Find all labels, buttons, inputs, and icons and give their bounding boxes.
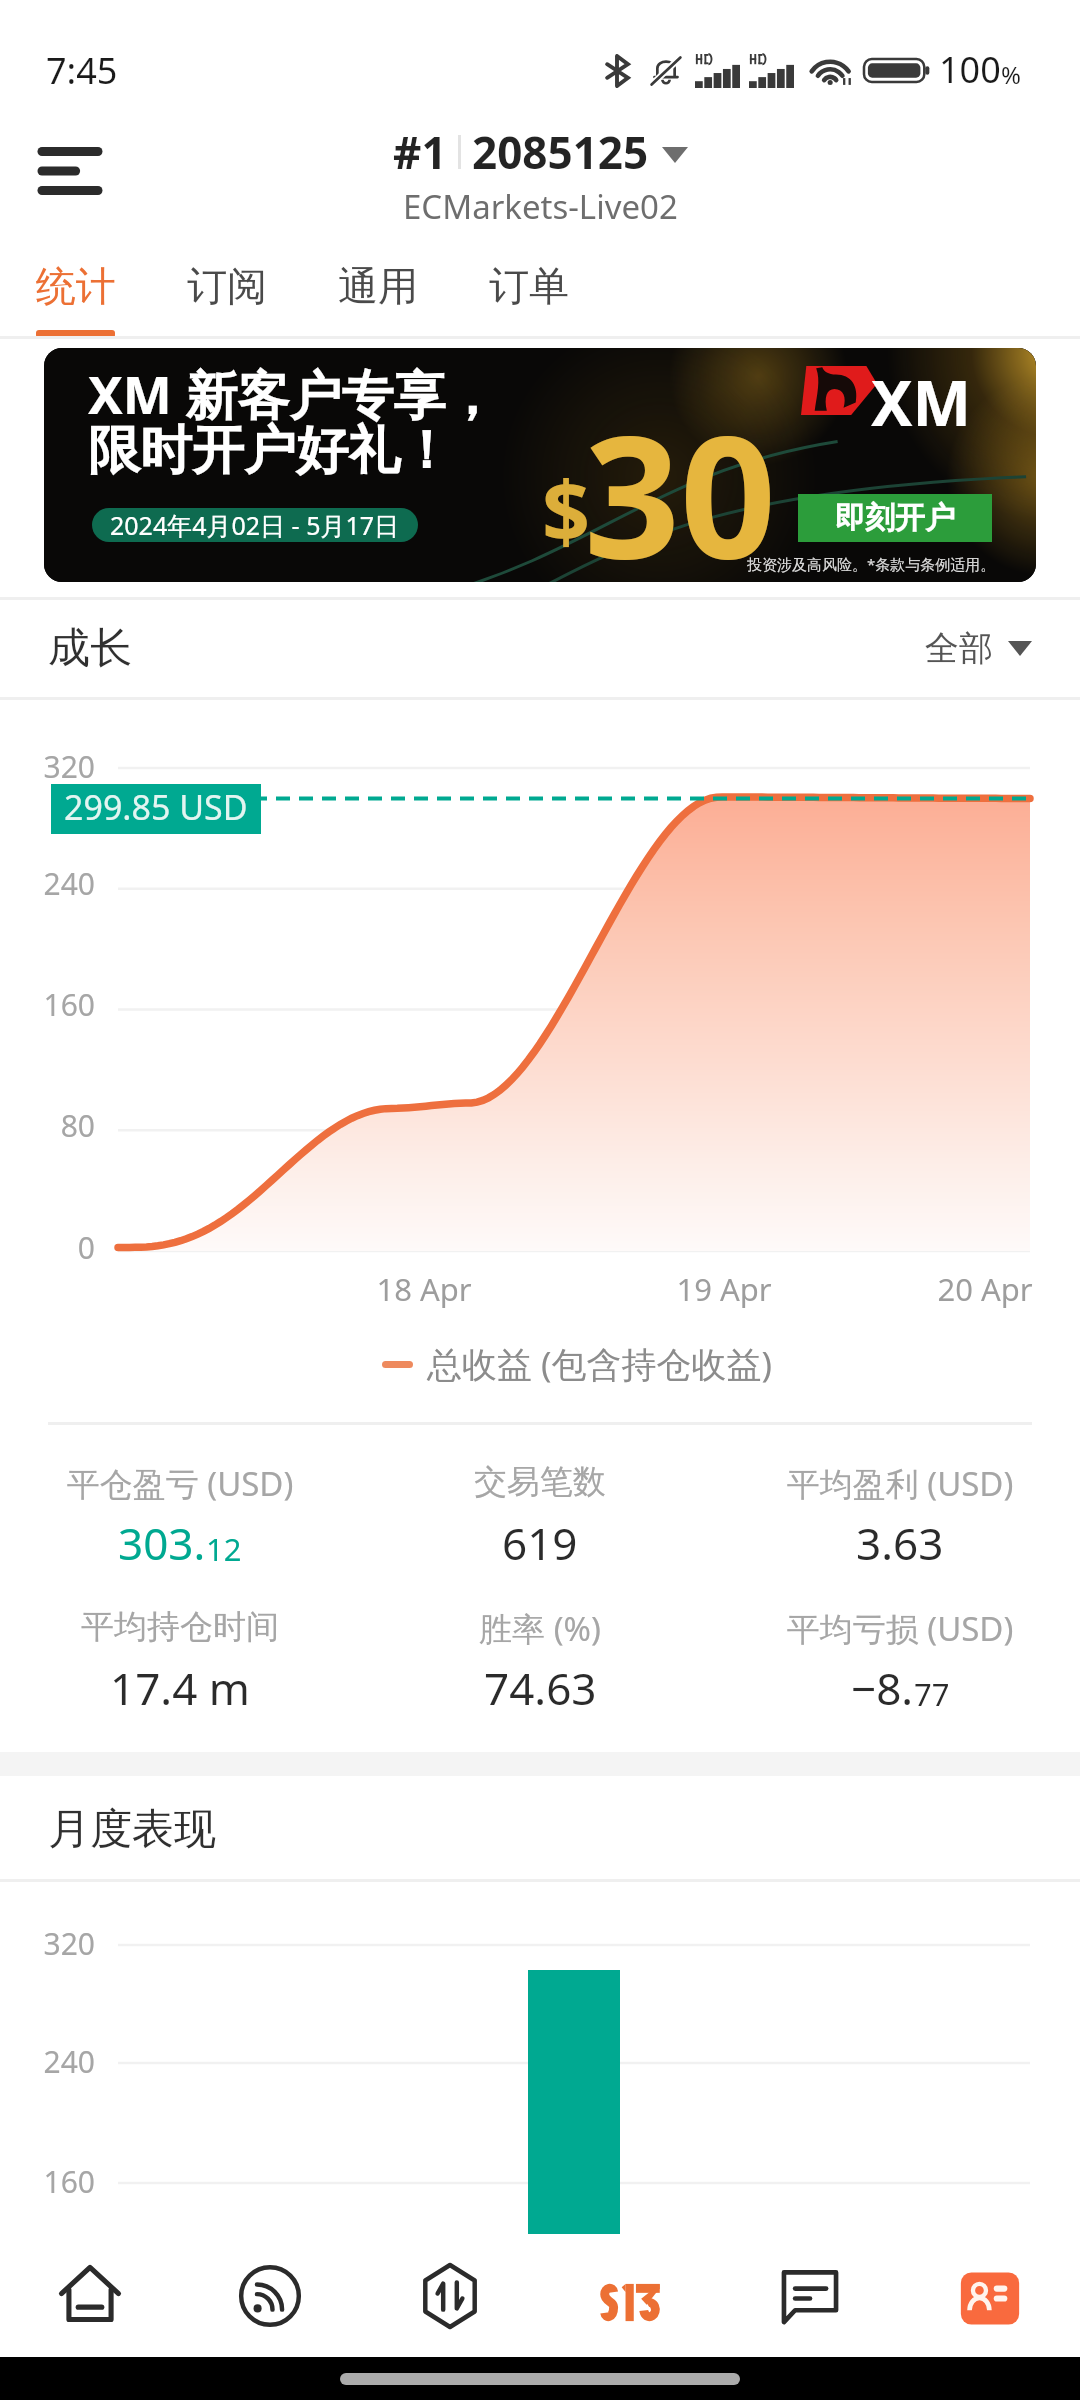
button[interactable]: S13 <box>540 2234 720 2357</box>
staticText: 胜率 (%) <box>360 1606 720 1651</box>
staticText: XM <box>871 360 972 444</box>
button[interactable]: 统计 <box>0 234 151 339</box>
staticText: 交易笔数 <box>360 1461 720 1503</box>
button[interactable]: 全部 <box>925 627 1032 670</box>
button[interactable]: Profile <box>900 2234 1080 2357</box>
staticText: 19 Apr <box>634 1268 814 1310</box>
staticText: 全部 <box>925 627 993 670</box>
staticText: $ <box>542 452 591 566</box>
staticText: ECMarkets-Live02 <box>403 184 678 229</box>
staticText: 80 <box>0 1105 95 1146</box>
staticText: 160 <box>0 984 95 1025</box>
staticText: 320 <box>0 1923 95 1964</box>
staticText: 即刻开户 <box>835 499 955 537</box>
staticText: 平仓盈亏 (USD) <box>0 1461 360 1506</box>
staticText: 通用 <box>338 261 418 311</box>
staticText: 619 <box>502 1513 578 1573</box>
button[interactable]: XM promo banner <box>44 348 1036 582</box>
staticText: 2024年4月02日 - 5月17日 <box>110 508 400 542</box>
staticText: % <box>1001 58 1021 91</box>
staticText: 0 <box>0 1227 95 1268</box>
staticText: 20 Apr <box>895 1268 1075 1310</box>
staticText: 30 <box>584 378 777 582</box>
staticText: 总收益 (包含持仓收益) <box>427 1340 773 1388</box>
staticText: 平均盈利 (USD) <box>720 1461 1080 1506</box>
staticText: 限时开户好礼！ <box>88 418 452 484</box>
staticText: 160 <box>0 2161 95 2202</box>
button[interactable]: Trade <box>360 2234 540 2357</box>
button[interactable]: Open account <box>798 494 992 542</box>
staticText: 74.63 <box>484 1658 597 1718</box>
staticText: 12 <box>206 1528 242 1570</box>
button[interactable]: 通用 <box>302 234 453 339</box>
staticText: 18 Apr <box>334 1268 514 1310</box>
staticText: XM 新客户专享， <box>88 358 498 429</box>
staticText: −8. <box>851 1658 914 1718</box>
staticText: 240 <box>0 2041 95 2082</box>
button[interactable]: #1 <box>393 122 688 229</box>
staticText: #1 <box>393 122 447 182</box>
staticText: 平均持仓时间 <box>0 1606 360 1648</box>
staticText: 7:45 <box>46 46 118 95</box>
staticText: 299.85 USD <box>64 784 248 830</box>
staticText: 成长 <box>48 622 132 675</box>
staticText: 100 <box>939 45 1001 94</box>
button[interactable]: Menu <box>12 113 128 229</box>
staticText: 303. <box>118 1513 206 1573</box>
staticText: 3.63 <box>856 1513 944 1573</box>
button[interactable]: 订阅 <box>151 234 302 339</box>
button[interactable]: Messages <box>720 2234 900 2357</box>
button[interactable]: Home <box>0 2234 180 2357</box>
staticText: 订阅 <box>187 261 267 311</box>
staticText: 月度表现 <box>48 1803 216 1856</box>
staticText: 77 <box>914 1673 950 1715</box>
staticText: 订单 <box>489 261 569 311</box>
button[interactable]: 订单 <box>453 234 604 339</box>
staticText: 统计 <box>36 261 116 311</box>
staticText: 2085125 <box>472 122 649 182</box>
button[interactable]: Signals <box>180 2234 360 2357</box>
staticText: 240 <box>0 863 95 904</box>
staticText: 320 <box>0 746 95 787</box>
staticText: 投资涉及高风险。*条款与条例适用。 <box>747 554 996 574</box>
staticText: 平均亏损 (USD) <box>720 1606 1080 1651</box>
staticText: 17.4 m <box>110 1658 250 1718</box>
